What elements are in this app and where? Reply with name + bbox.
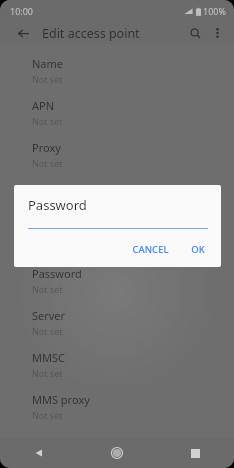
button[interactable]: CANCEL [124, 239, 177, 260]
staticText: 10:00 [10, 5, 34, 17]
staticText: Not set [32, 409, 63, 421]
button[interactable]: OK [183, 239, 213, 260]
button[interactable]: Proxy [0, 136, 234, 178]
button[interactable]: Home [78, 438, 156, 468]
staticText: Username [32, 224, 86, 239]
staticText: Not set [32, 199, 63, 211]
button[interactable]: Navigate up [12, 22, 34, 44]
staticText: Password [28, 196, 87, 214]
button[interactable]: APN [0, 94, 234, 136]
button[interactable]: Password [0, 262, 234, 304]
staticText: CANCEL [132, 243, 169, 256]
button[interactable]: MMS port [0, 430, 234, 468]
staticText: APN [32, 98, 55, 113]
staticText: Name [32, 56, 64, 71]
staticText: Not set [32, 73, 63, 85]
staticText: Password [32, 266, 82, 281]
staticText: 100% [203, 5, 226, 17]
button[interactable]: Recent apps [156, 438, 234, 468]
staticText: OK [191, 243, 205, 256]
button[interactable]: MMS proxy [0, 388, 234, 430]
staticText: Edit access point [42, 25, 140, 42]
button[interactable]: Server [0, 304, 234, 346]
button[interactable]: More options [206, 22, 228, 44]
button[interactable]: MMSC [0, 346, 234, 388]
staticText: MMS proxy [32, 392, 90, 407]
button[interactable]: Name [0, 52, 234, 94]
button[interactable]: Back [0, 438, 78, 468]
staticText: Not set [32, 157, 63, 169]
button[interactable]: Search [184, 22, 206, 44]
staticText: Not set [32, 115, 63, 127]
staticText: Server [32, 308, 66, 323]
button[interactable]: Port [0, 178, 234, 220]
button[interactable]: Username [0, 220, 234, 262]
staticText: MMSC [32, 350, 65, 365]
staticText: Proxy [32, 140, 61, 155]
staticText: Port [32, 182, 54, 197]
staticText: Not set [32, 325, 63, 337]
staticText: Not set [32, 367, 63, 379]
staticText: Not set [32, 283, 63, 295]
